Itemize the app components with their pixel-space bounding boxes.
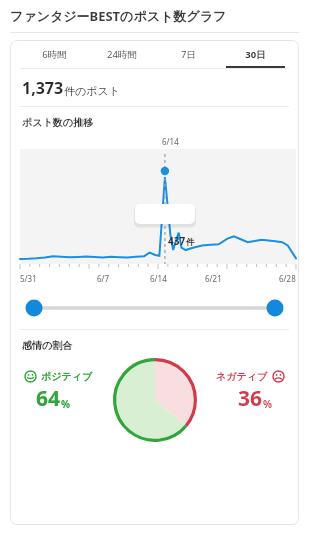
staticText: 7日	[181, 48, 196, 61]
staticText: ファンタジーBESTのポスト数グラフ	[10, 7, 227, 25]
staticText: ネガティブ	[216, 370, 268, 383]
staticText: 6/7	[97, 273, 110, 284]
staticText: 64	[36, 384, 61, 413]
staticText: 5/31	[20, 273, 37, 284]
staticText: ポスト数の推移	[22, 116, 93, 129]
staticText: 24時間	[107, 48, 137, 61]
staticText: 6/21	[205, 273, 222, 284]
staticText: 6/14	[150, 273, 167, 284]
staticText: 6/14	[162, 136, 179, 147]
other: Positive	[24, 370, 37, 383]
staticText: 36	[238, 384, 263, 413]
staticText: 6時間	[42, 48, 67, 61]
staticText: 6/28	[279, 273, 296, 284]
button[interactable]: 30日	[222, 40, 289, 68]
staticText: %	[61, 397, 71, 411]
staticText: 437	[168, 234, 186, 248]
staticText: 件のポスト	[64, 84, 121, 98]
other: Negative	[272, 370, 285, 383]
button[interactable]: 7日	[155, 40, 222, 68]
button[interactable]: 24時間	[88, 40, 155, 68]
button[interactable]: Date range slider	[10, 297, 299, 319]
button[interactable]: 6時間	[20, 40, 88, 68]
staticText: 感情の割合	[22, 339, 73, 352]
staticText: %	[263, 397, 273, 411]
staticText: 30日	[245, 48, 266, 61]
staticText: 件	[186, 237, 195, 248]
staticText: 1,373	[22, 77, 64, 99]
staticText: ポジティブ	[41, 370, 93, 383]
